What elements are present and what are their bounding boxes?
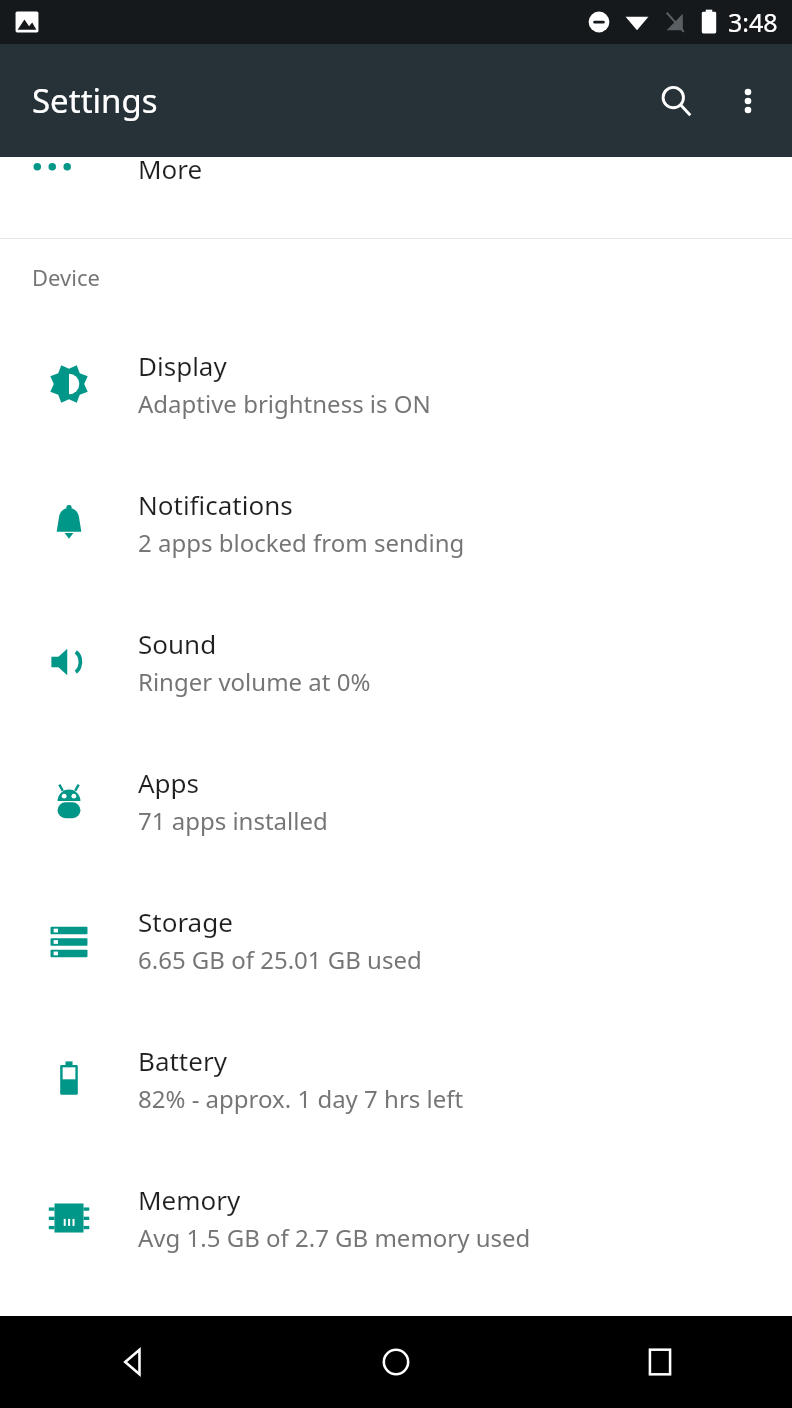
button[interactable]: Sound: [0, 592, 792, 731]
staticText: Memory: [138, 1182, 241, 1217]
button[interactable]: Display: [0, 314, 792, 453]
staticText: Settings: [32, 78, 158, 123]
staticText: Battery: [138, 1043, 227, 1078]
staticText: 2 apps blocked from sending: [138, 526, 465, 559]
staticText: 82% - approx. 1 day 7 hrs left: [138, 1082, 464, 1115]
button[interactable]: Notifications: [0, 453, 792, 592]
button[interactable]: Apps: [0, 731, 792, 870]
button[interactable]: Memory: [0, 1148, 792, 1287]
staticText: Adaptive brightness is ON: [138, 387, 431, 420]
button[interactable]: Back: [0, 1316, 264, 1408]
staticText: Display: [138, 348, 227, 383]
button[interactable]: Home: [264, 1316, 528, 1408]
staticText: 3:48: [728, 5, 778, 39]
staticText: More: [138, 151, 203, 186]
staticText: Notifications: [138, 487, 293, 522]
button[interactable]: More options: [712, 65, 784, 137]
staticText: Storage: [138, 904, 233, 939]
button[interactable]: More: [0, 157, 792, 238]
button[interactable]: Search: [640, 65, 712, 137]
staticText: Apps: [138, 765, 200, 800]
staticText: 71 apps installed: [138, 804, 328, 837]
staticText: 6.65 GB of 25.01 GB used: [138, 943, 422, 976]
button[interactable]: Recent apps: [528, 1316, 792, 1408]
button[interactable]: Storage: [0, 870, 792, 1009]
staticText: Device: [32, 262, 100, 292]
staticText: Sound: [138, 626, 217, 661]
button[interactable]: Battery: [0, 1009, 792, 1148]
staticText: Ringer volume at 0%: [138, 665, 371, 698]
staticText: Avg 1.5 GB of 2.7 GB memory used: [138, 1221, 531, 1254]
